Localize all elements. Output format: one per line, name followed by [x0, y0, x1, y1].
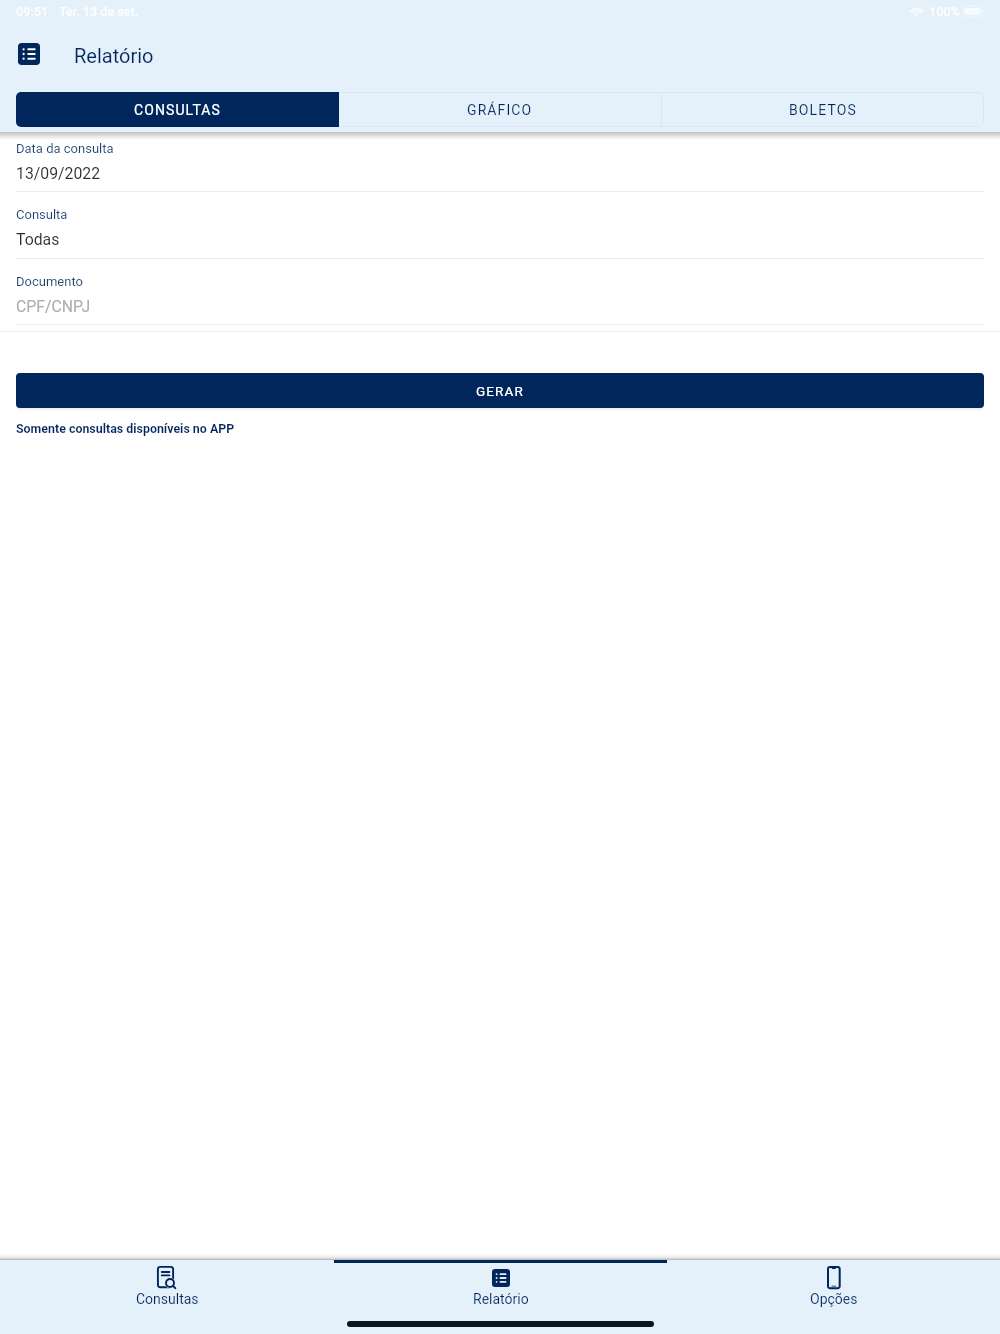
button[interactable]: Consultas	[0, 1260, 334, 1334]
button[interactable]: CONSULTAS	[16, 92, 339, 127]
staticText: Todas	[16, 230, 60, 249]
staticText: CPF/CNPJ	[16, 297, 91, 316]
staticText: Consulta	[16, 207, 68, 222]
staticText: GERAR	[476, 383, 524, 399]
staticText: Opções	[810, 1291, 858, 1307]
button[interactable]: GRÁFICO	[339, 92, 661, 127]
staticText: CONSULTAS	[134, 102, 221, 118]
button[interactable]: BOLETOS	[662, 92, 984, 127]
staticText: 13/09/2022	[16, 164, 101, 183]
staticText: Consultas	[136, 1291, 199, 1307]
staticText: 100%	[929, 4, 960, 19]
staticText: BOLETOS	[789, 102, 857, 118]
staticText: GRÁFICO	[467, 102, 533, 118]
button[interactable]: Consulta	[0, 207, 1000, 263]
button[interactable]: Opções	[667, 1260, 1000, 1334]
staticText: Data da consulta	[16, 141, 114, 156]
staticText: Ter. 13 de set.	[59, 4, 139, 19]
button[interactable]: Menu	[18, 43, 40, 65]
button[interactable]: Relatório	[334, 1260, 667, 1334]
staticText: Relatório	[473, 1291, 529, 1307]
button[interactable]: GERAR	[16, 373, 984, 408]
button[interactable]: Data da consulta	[0, 141, 1000, 197]
button[interactable]: Documento	[0, 274, 1000, 330]
staticText: Documento	[16, 274, 83, 289]
staticText: 09:51	[16, 4, 48, 19]
staticText: Relatório	[74, 44, 154, 67]
staticText: Somente consultas disponíveis no APP	[16, 421, 235, 436]
